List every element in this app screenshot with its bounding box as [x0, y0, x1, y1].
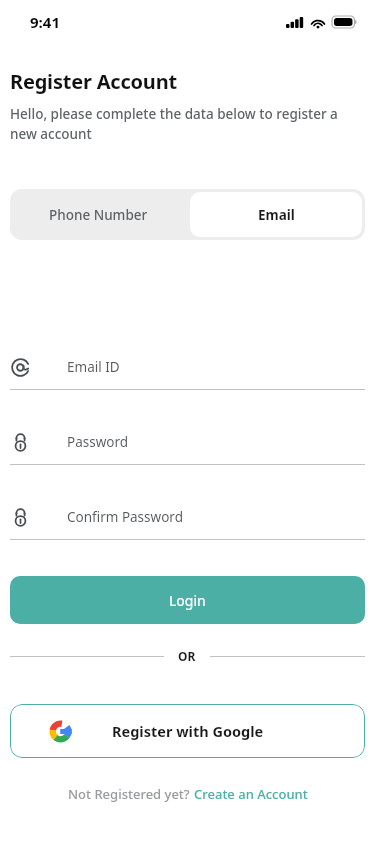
- button[interactable]: Phone Number: [10, 189, 187, 240]
- button[interactable]: Email: [10, 345, 365, 390]
- button[interactable]: Login: [10, 576, 365, 624]
- button[interactable]: Password: [10, 420, 365, 465]
- staticText: Phone Number: [49, 206, 148, 224]
- staticText: 9:41: [30, 12, 60, 32]
- other: Password: [10, 432, 31, 453]
- other: Email: [10, 357, 31, 378]
- staticText: Login: [169, 591, 206, 610]
- staticText: Hello, please complete the data below to…: [10, 105, 345, 143]
- staticText: Register with Google: [112, 721, 264, 741]
- other: Password: [10, 507, 31, 528]
- button[interactable]: Password: [10, 495, 365, 540]
- staticText: Email: [258, 206, 295, 224]
- button[interactable]: Email: [190, 192, 362, 237]
- staticText: Password: [67, 433, 129, 451]
- staticText: OR: [178, 648, 196, 664]
- button[interactable]: Register with Google: [10, 704, 365, 758]
- staticText: Email ID: [67, 358, 120, 376]
- staticText: Create an Account: [194, 785, 308, 803]
- button[interactable]: Create an Account: [194, 785, 308, 803]
- staticText: Register Account: [10, 68, 177, 95]
- staticText: Not Registered yet?: [68, 785, 194, 803]
- other: Google: [48, 719, 73, 744]
- staticText: Confirm Password: [67, 508, 183, 526]
